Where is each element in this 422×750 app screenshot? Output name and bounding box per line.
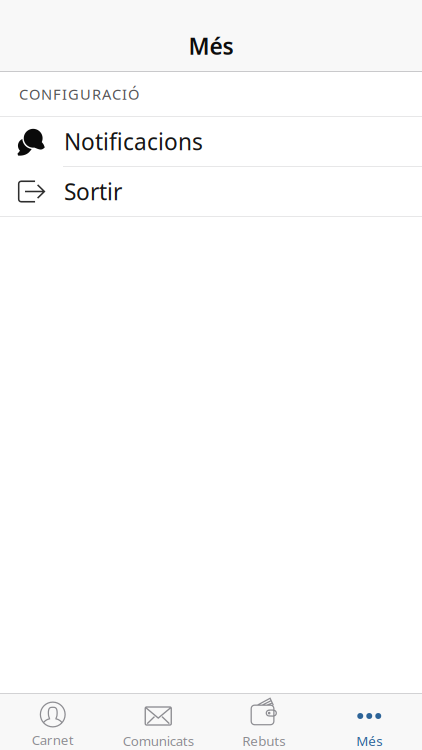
button[interactable]: Carnet	[0, 694, 105, 750]
button[interactable]: Sortir	[0, 167, 422, 216]
staticText: Comunicats	[123, 732, 194, 750]
staticText: C O N F I G U R A C I Ó	[19, 84, 139, 104]
staticText: Notificacions	[64, 126, 203, 156]
button[interactable]: Més	[316, 694, 422, 750]
staticText: Sortir	[64, 176, 122, 206]
staticText: Més	[188, 31, 233, 61]
staticText: Rebuts	[242, 732, 285, 750]
button[interactable]: Rebuts	[211, 694, 316, 750]
button[interactable]: Comunicats	[105, 694, 211, 750]
staticText: Més	[356, 732, 382, 750]
staticText: Carnet	[32, 731, 74, 749]
button[interactable]: Notificacions	[0, 117, 422, 167]
